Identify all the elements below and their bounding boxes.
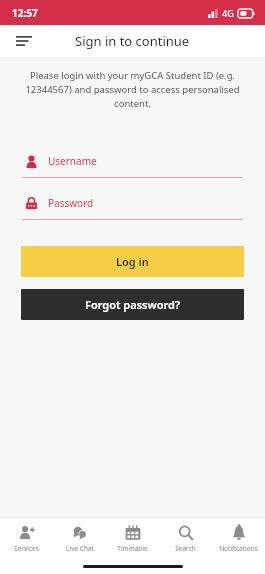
button[interactable]: Log in <box>21 246 244 277</box>
staticText: Sign in to continue <box>75 32 190 50</box>
staticText: Search <box>175 544 196 553</box>
staticText: Password <box>48 196 94 210</box>
staticText: Username <box>48 154 97 168</box>
button[interactable]: Open navigation menu <box>8 25 40 57</box>
staticText: Forgot password? <box>85 297 180 312</box>
button[interactable]: Forgot password? <box>21 289 244 320</box>
button[interactable]: Search <box>159 518 212 559</box>
staticText: Notifications <box>219 544 258 553</box>
staticText: Log in <box>116 254 149 269</box>
button[interactable]: Password <box>22 194 243 220</box>
staticText: 12:57 <box>12 6 38 20</box>
staticText: Live Chat <box>66 544 94 553</box>
staticText: Services <box>14 544 39 553</box>
button[interactable]: Notifications <box>212 518 265 559</box>
button[interactable]: Services <box>0 518 53 559</box>
staticText: 4G <box>222 7 234 19</box>
staticText: Timetable <box>117 544 148 553</box>
button[interactable]: Username <box>22 152 243 178</box>
button[interactable]: Live Chat <box>53 518 106 559</box>
button[interactable]: Timetable <box>106 518 159 559</box>
staticText: Please login with your myGCA Student ID … <box>20 69 245 110</box>
